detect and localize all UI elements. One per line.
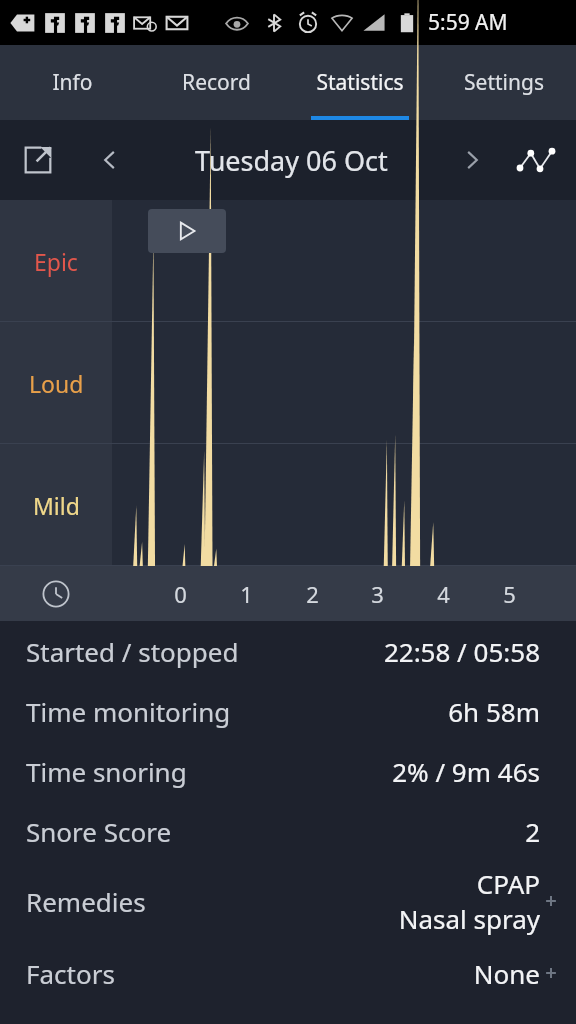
staticText: 3: [371, 579, 384, 609]
staticText: 5:59 AM: [428, 8, 508, 37]
staticText: 2: [306, 579, 319, 609]
button[interactable]: Remedies: [0, 861, 576, 941]
button[interactable]: Time monitoring: [0, 681, 576, 741]
button[interactable]: Previous day: [88, 138, 132, 182]
staticText: 0: [174, 579, 187, 609]
button[interactable]: Play recording: [148, 209, 226, 253]
staticText: Remedies: [26, 884, 146, 919]
staticText: Nasal spray: [398, 901, 540, 936]
staticText: Statistics: [316, 68, 404, 97]
staticText: Started / stopped: [26, 634, 239, 669]
staticText: 5: [503, 579, 516, 609]
button[interactable]: Trends chart: [512, 136, 560, 184]
button[interactable]: Info: [0, 45, 144, 120]
staticText: Mild: [33, 490, 80, 521]
staticText: Time monitoring: [26, 694, 231, 729]
button[interactable]: Statistics: [288, 45, 432, 120]
staticText: 4: [437, 579, 450, 609]
button[interactable]: Started / stopped: [0, 621, 576, 681]
staticText: 22:58 / 05:58: [383, 634, 540, 669]
button[interactable]: Snore Score: [0, 801, 576, 861]
button[interactable]: Factors: [0, 941, 576, 1005]
button[interactable]: Time: [40, 578, 72, 610]
staticText: 2% / 9m 46s: [392, 754, 540, 789]
staticText: None: [473, 956, 540, 991]
staticText: Snore Score: [26, 814, 172, 849]
staticText: Epic: [34, 246, 78, 277]
button[interactable]: Next day: [450, 138, 494, 182]
staticText: 1: [240, 579, 253, 609]
staticText: Tuesday 06 Oct: [195, 142, 388, 179]
button[interactable]: Record: [144, 45, 288, 120]
staticText: Record: [182, 68, 251, 97]
staticText: Settings: [464, 68, 544, 97]
button[interactable]: Settings: [432, 45, 576, 120]
staticText: CPAP: [476, 866, 540, 901]
staticText: 6h 58m: [448, 694, 540, 729]
staticText: Info: [52, 68, 93, 97]
button[interactable]: Time snoring: [0, 741, 576, 801]
staticText: Factors: [26, 956, 115, 991]
staticText: Loud: [29, 368, 84, 399]
staticText: 2: [525, 814, 540, 849]
staticText: Time snoring: [26, 754, 187, 789]
button[interactable]: Export: [16, 138, 60, 182]
